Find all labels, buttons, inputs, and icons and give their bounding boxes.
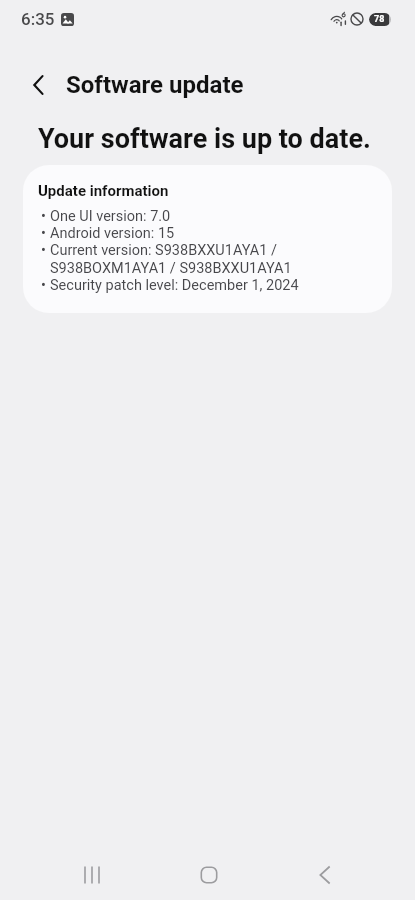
staticText: 78 [374, 14, 385, 25]
staticText: Security patch level: December 1, 2024 [50, 277, 299, 294]
staticText: • [41, 277, 46, 294]
staticText: Software update [66, 71, 244, 99]
staticText: Update information [38, 182, 169, 200]
staticText: • [41, 242, 46, 259]
button[interactable]: Back [303, 853, 347, 897]
staticText: Current version: S938BXXU1AYA1 / S938BOX… [50, 242, 292, 277]
staticText: • [41, 208, 46, 225]
button[interactable]: Navigate up [23, 69, 55, 101]
staticText: One UI version: 7.0 [50, 208, 171, 225]
staticText: • [41, 225, 46, 242]
button[interactable]: Recent apps [70, 853, 114, 897]
staticText: Android version: 15 [50, 225, 175, 242]
staticText: 6:35 [21, 9, 55, 29]
staticText: Your software is up to date. [38, 123, 371, 155]
button[interactable]: Home [187, 853, 231, 897]
